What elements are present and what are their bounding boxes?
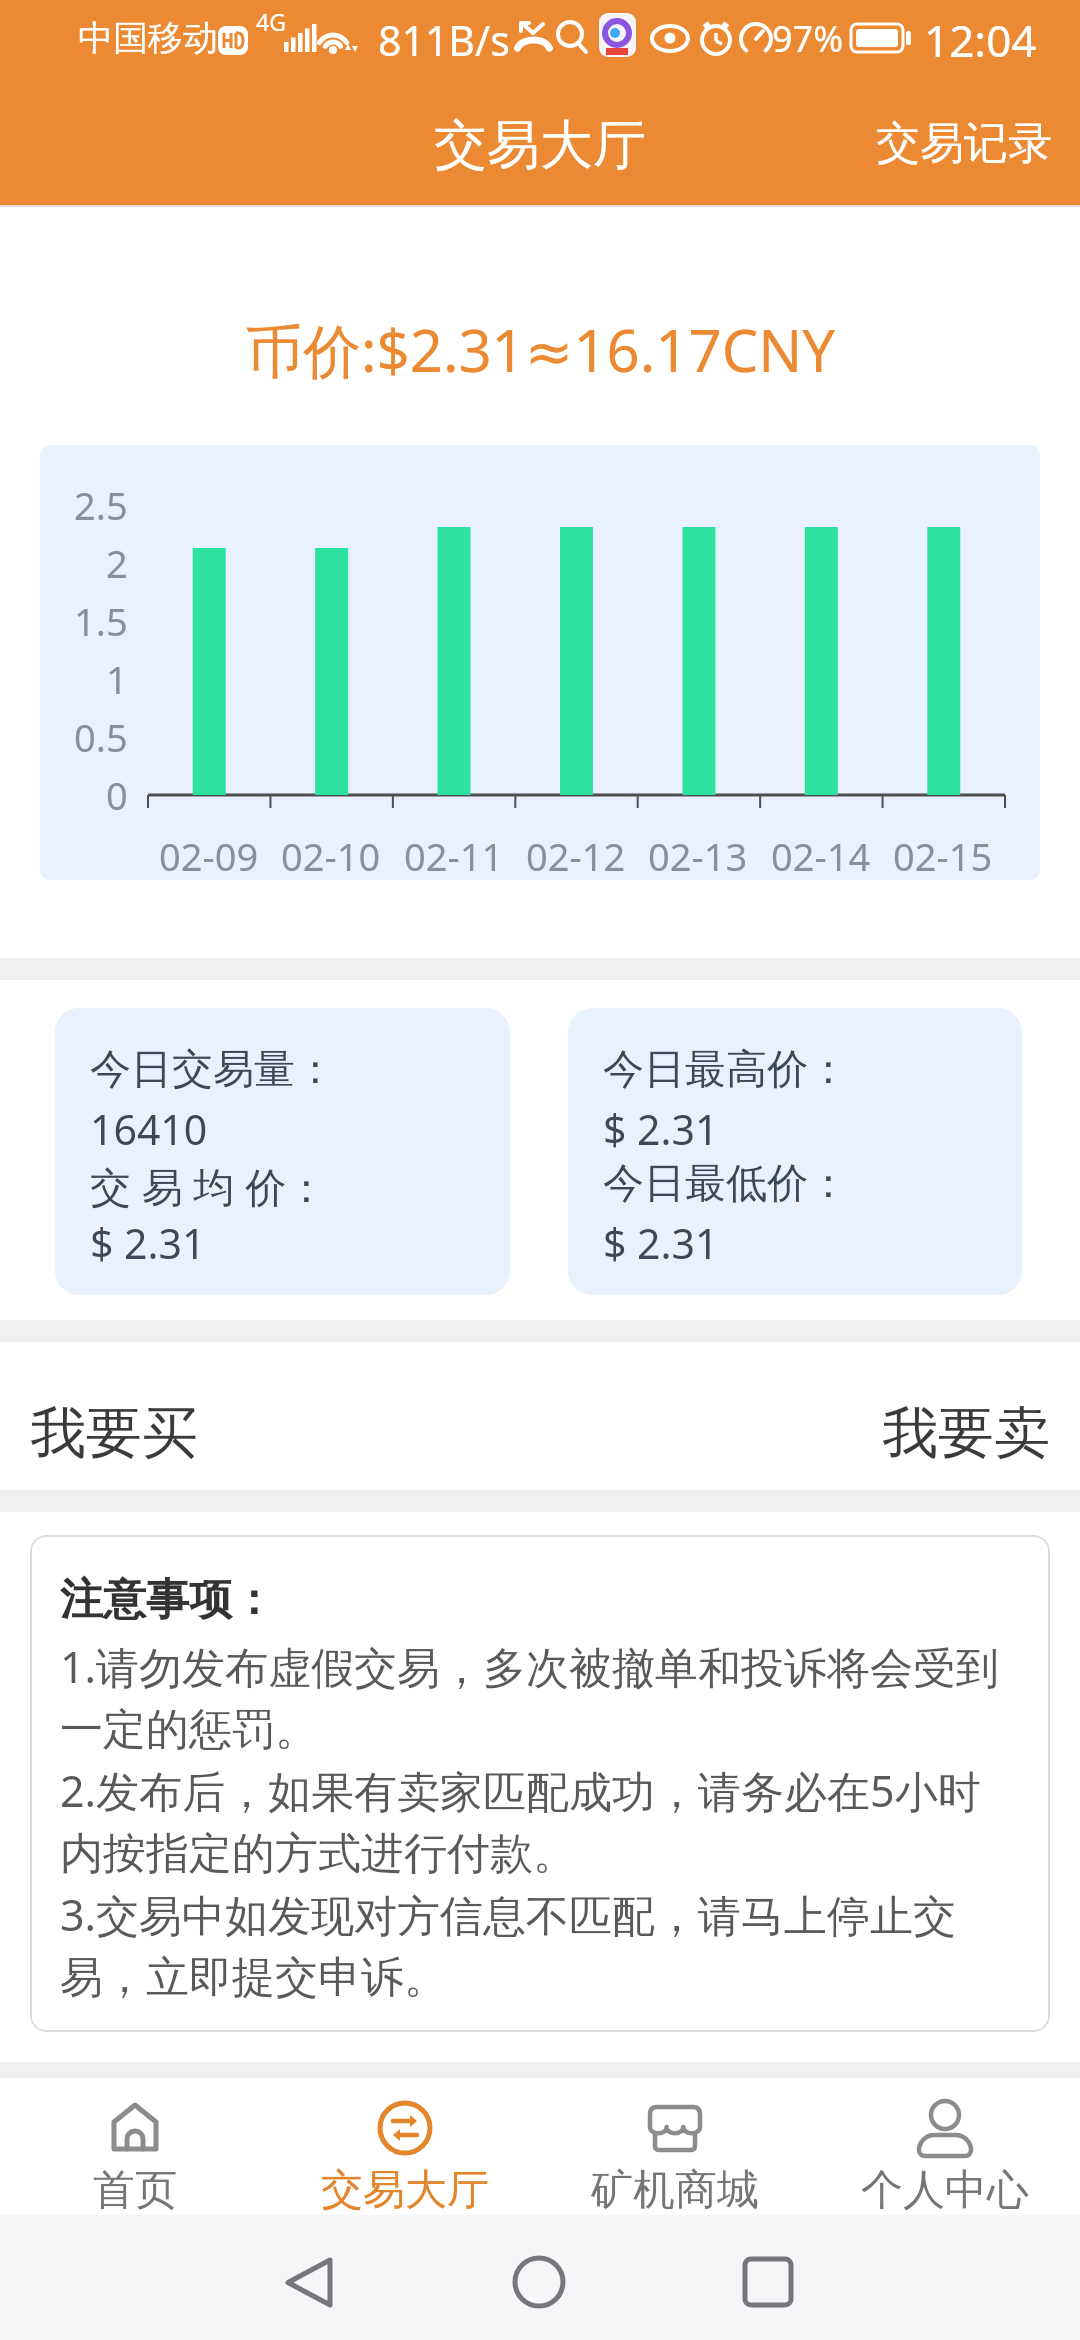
button[interactable]	[723, 2240, 813, 2330]
staticText: 02-12	[526, 830, 626, 880]
staticText: 交易大厅	[434, 112, 646, 174]
staticText: 1.5	[74, 595, 128, 647]
staticText: 交易记录	[876, 116, 1052, 170]
staticText: 16410	[90, 1101, 208, 1153]
staticText: 2.5	[74, 479, 128, 531]
button[interactable]: 矿机商城	[540, 2078, 810, 2215]
staticText: 02-13	[648, 830, 748, 880]
button[interactable]: 首页	[0, 2078, 270, 2215]
staticText: 2	[106, 537, 128, 589]
staticText: 今日最高价：	[603, 1044, 849, 1096]
staticText: 今日交易量：	[90, 1044, 336, 1096]
staticText: 交易大厅	[321, 2164, 489, 2214]
staticText: 02-10	[281, 830, 381, 880]
staticText: 0	[106, 769, 128, 821]
staticText: 02-11	[404, 830, 504, 880]
staticText: 12:04	[924, 10, 1037, 66]
staticText: 1	[106, 653, 128, 705]
staticText: 02-09	[159, 830, 259, 880]
staticText: 中国移动	[78, 16, 218, 60]
staticText: 97%	[772, 14, 844, 63]
staticText: 首页	[93, 2164, 177, 2214]
button[interactable]: 我要卖	[790, 1398, 1050, 1462]
staticText: 1.请勿发布虚假交易，多次被撤单和投诉将会受到 一定的惩罚。 2.发布后，如果有…	[60, 1637, 1000, 2004]
staticText: 4G	[256, 6, 286, 36]
staticText: 02-14	[771, 830, 871, 880]
staticText: 02-15	[893, 830, 993, 880]
staticText: 今日最低价：	[603, 1158, 849, 1210]
button[interactable]: 我要买	[30, 1398, 290, 1462]
staticText: $ 2.31	[90, 1215, 206, 1267]
staticText: 0.5	[74, 711, 128, 763]
button[interactable]: 个人中心	[810, 2078, 1080, 2215]
staticText: 矿机商城	[591, 2164, 759, 2214]
staticText: 交 易 均 价：	[90, 1158, 327, 1210]
staticText: 我要卖	[882, 1398, 1050, 1462]
staticText: 币价:$2.31≈16.17CNY	[245, 310, 836, 380]
staticText: 我要买	[30, 1398, 198, 1462]
button[interactable]	[494, 2240, 584, 2330]
button[interactable]: 交易记录	[860, 116, 1052, 170]
button[interactable]	[270, 2240, 360, 2330]
staticText: 注意事项：	[60, 1573, 275, 1625]
staticText: 个人中心	[861, 2164, 1029, 2214]
staticText: $ 2.31	[603, 1215, 719, 1267]
button[interactable]: 交易大厅	[270, 2078, 540, 2215]
staticText: $ 2.31	[603, 1101, 719, 1153]
staticText: 811B/s	[378, 12, 510, 64]
